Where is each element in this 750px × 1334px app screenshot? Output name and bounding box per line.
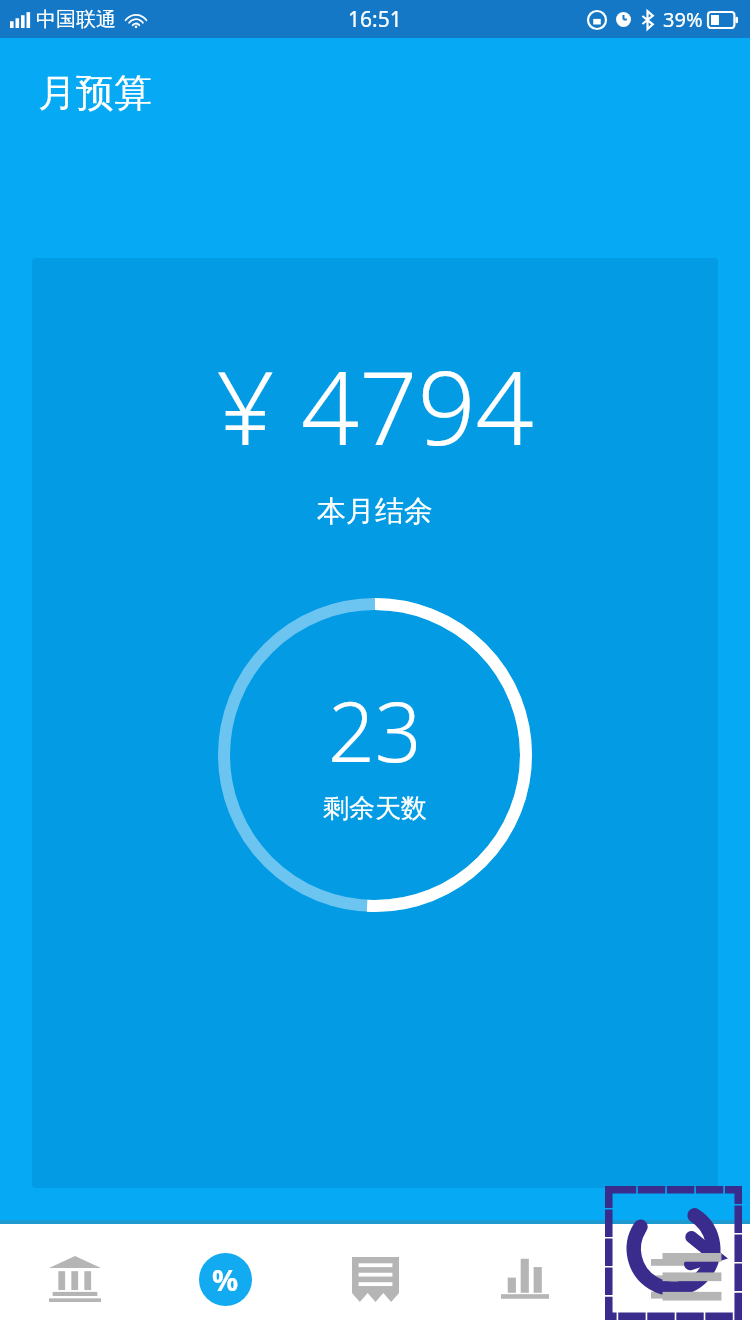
staticText: 月预算 <box>38 69 152 117</box>
button[interactable]: More <box>600 1224 750 1334</box>
staticText: % <box>212 1260 239 1299</box>
button[interactable]: Statistics <box>450 1224 600 1334</box>
button[interactable]: ¥ 4794 <box>32 258 718 1188</box>
button[interactable]: Records <box>300 1224 450 1334</box>
staticText: ¥ 4794 <box>216 336 534 475</box>
staticText: 中国联通 <box>36 7 116 32</box>
staticText: 剩余天数 <box>323 792 427 825</box>
staticText: 本月结余 <box>317 493 433 530</box>
staticText: 23 <box>328 674 422 786</box>
button[interactable]: Accounts <box>0 1224 150 1334</box>
staticText: 39% <box>663 6 703 33</box>
staticText: 16:51 <box>348 5 402 34</box>
button[interactable]: Budget <box>150 1224 300 1334</box>
